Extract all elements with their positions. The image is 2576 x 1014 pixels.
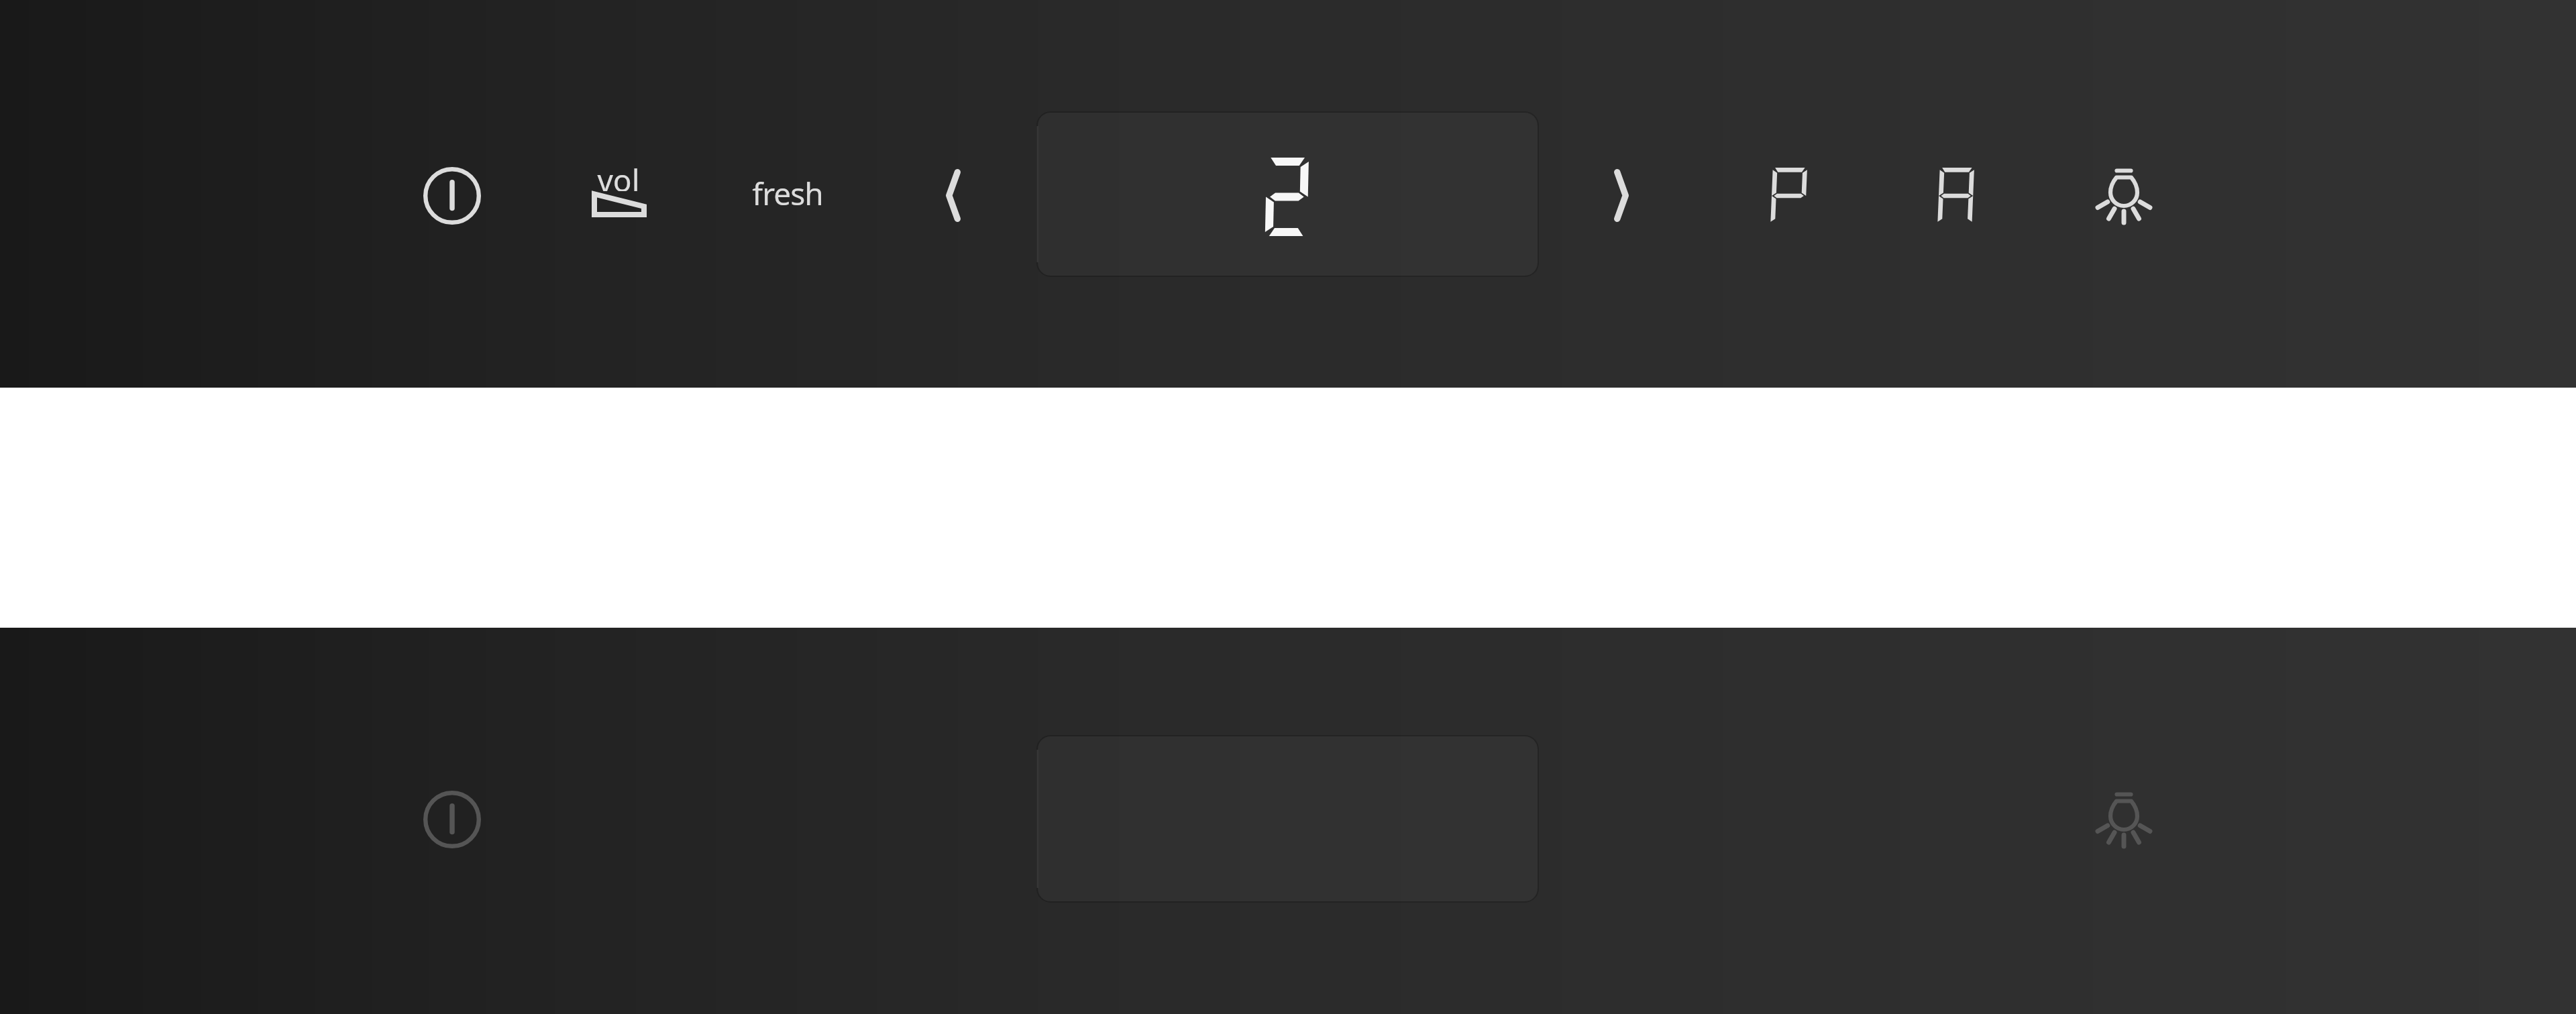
button[interactable]: Intensive mode [1772, 168, 1807, 224]
button[interactable]: Power [423, 167, 481, 225]
staticText: vol [597, 159, 640, 191]
button[interactable]: Light [2094, 789, 2153, 850]
button[interactable]: Fan speed [588, 162, 649, 220]
button[interactable]: Automatic mode [1939, 168, 1974, 224]
button[interactable]: fresh [744, 166, 831, 221]
button[interactable]: Decrease [945, 168, 961, 223]
staticText: fresh [752, 172, 823, 215]
button[interactable]: Power [423, 791, 481, 848]
button[interactable]: Light [2094, 166, 2153, 226]
button[interactable]: Increase [1613, 168, 1629, 223]
